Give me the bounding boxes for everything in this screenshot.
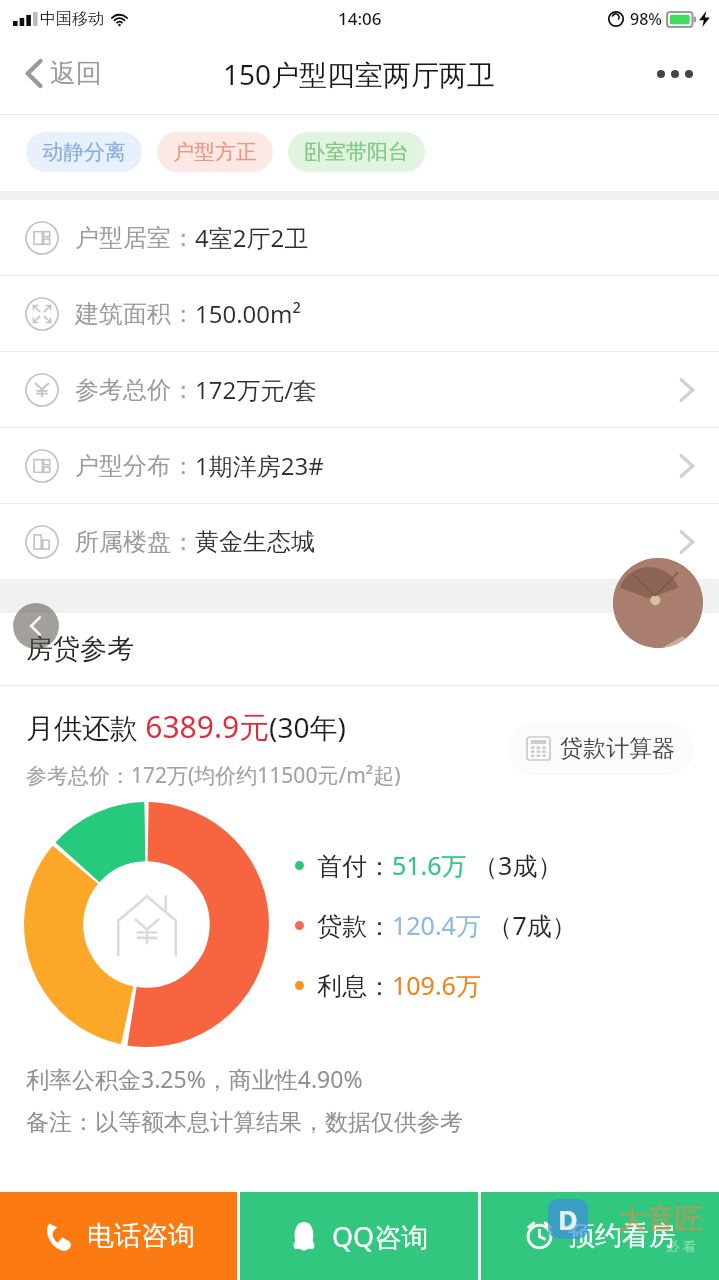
staticText: 1期洋房23# [195, 449, 324, 482]
staticText: 返回 [50, 57, 102, 90]
staticText: 14:06 [338, 7, 382, 30]
button[interactable]: 所属楼盘： [0, 504, 719, 579]
staticText: 参考总价：172万(均价约11500元/m²起) [26, 761, 401, 790]
staticText: 贷款：120.4万 （7成） [317, 908, 577, 942]
staticText: 预约看房 [568, 1219, 676, 1253]
staticText: 备注：以等额本息计算结果，数据仅供参考 [26, 1108, 463, 1137]
button[interactable]: QQ咨询 [240, 1192, 478, 1280]
staticText: 利息：109.6万 [317, 968, 481, 1002]
staticText: 户型方正 [173, 139, 257, 165]
button[interactable]: 预约看房 [481, 1192, 719, 1280]
button[interactable]: 返回 [20, 47, 108, 100]
button[interactable]: 电话咨询 [0, 1192, 237, 1280]
staticText: 首付：51.6万 （3成） [317, 848, 563, 882]
staticText: D [558, 1201, 578, 1238]
staticText: 利率公积金3.25%，商业性4.90% [26, 1063, 363, 1094]
button[interactable]: 参考总价： [0, 352, 719, 427]
staticText: 动静分离 [42, 139, 126, 165]
staticText: 户型居室： [75, 223, 195, 253]
button[interactable]: Back [13, 603, 59, 649]
button[interactable]: Agent avatar [613, 558, 703, 648]
staticText: 户型分布： [75, 451, 195, 481]
button[interactable]: More options [649, 50, 701, 98]
staticText: QQ咨询 [332, 1218, 429, 1255]
staticText: 参考总价： [75, 375, 195, 405]
staticText: 卧室带阳台 [304, 139, 409, 165]
staticText: 中国移动 [40, 9, 104, 29]
staticText: 172万元/套 [195, 373, 318, 406]
button[interactable]: 动静分离 [26, 132, 142, 172]
staticText: 房贷参考 [26, 632, 134, 666]
staticText: 黄金生态城 [195, 527, 315, 557]
button[interactable]: 卧室带阳台 [288, 132, 425, 172]
staticText: 必 看 [666, 1237, 696, 1255]
staticText: 150.00m² [195, 297, 301, 330]
staticText: 月供还款 6389.9元(30年) [26, 706, 346, 747]
staticText: 建筑面积： [75, 299, 195, 329]
staticText: 150户型四室两厅两卫 [223, 55, 496, 93]
staticText: 电话咨询 [87, 1219, 195, 1253]
button[interactable]: 户型方正 [157, 132, 273, 172]
staticText: 4室2厅2卫 [195, 221, 309, 254]
staticText: 大音匠 [618, 1202, 702, 1237]
button[interactable]: 户型分布： [0, 428, 719, 503]
button[interactable]: 贷款计算器 [508, 722, 694, 775]
staticText: 所属楼盘： [75, 527, 195, 557]
staticText: 贷款计算器 [560, 734, 675, 763]
staticText: 98% [630, 8, 662, 30]
